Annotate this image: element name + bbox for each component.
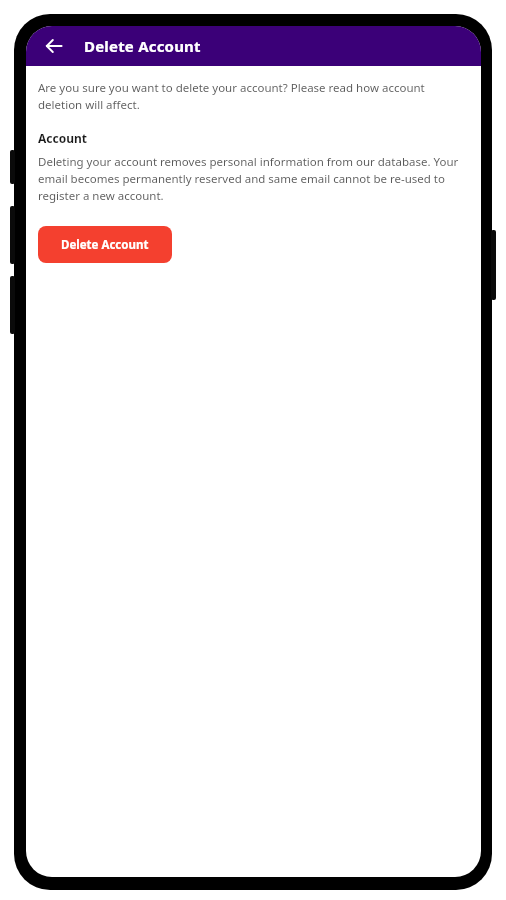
staticText: Deleting your account removes personal i… xyxy=(38,154,469,204)
button[interactable]: Delete Account xyxy=(38,226,172,263)
button[interactable]: Back xyxy=(36,28,72,64)
staticText: Delete Account xyxy=(61,237,149,253)
staticText: Account xyxy=(38,130,87,146)
staticText: Are you sure you want to delete your acc… xyxy=(38,80,469,113)
staticText: Delete Account xyxy=(84,36,201,56)
